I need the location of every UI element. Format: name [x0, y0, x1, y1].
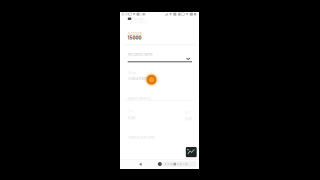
staticText: Add a memo — [128, 76, 149, 81]
staticText: 0.00 — [185, 117, 192, 121]
staticText: Wallet balance — [127, 96, 151, 100]
staticText: 15000 — [128, 35, 142, 41]
button[interactable]: Menu — [128, 18, 131, 20]
button[interactable]: Back — [139, 162, 142, 166]
staticText: 0.00 — [128, 115, 135, 120]
button[interactable]: Home — [158, 162, 162, 166]
staticText: Transaction limit — [127, 135, 154, 140]
staticText: USD — [184, 111, 190, 115]
staticText: Note — [128, 71, 136, 75]
staticText: Recipient name — [128, 52, 153, 57]
staticText: Account — [128, 31, 142, 36]
staticText: Transfer — [131, 17, 144, 21]
staticText: 10:34 — [121, 12, 129, 16]
